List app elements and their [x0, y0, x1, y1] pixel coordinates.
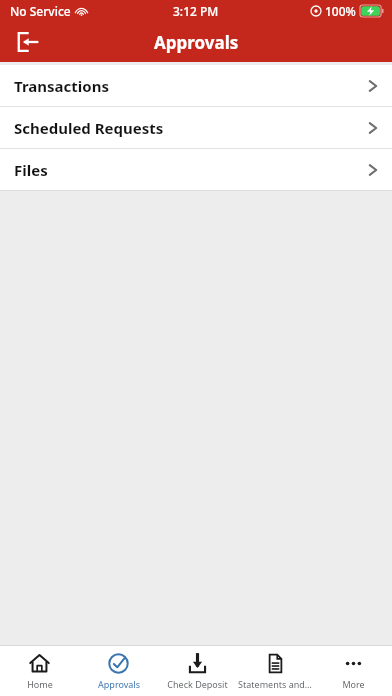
button[interactable]: Scheduled Requests: [0, 107, 392, 148]
button[interactable]: Approvals: [79, 646, 158, 696]
button[interactable]: Home: [0, 646, 79, 696]
staticText: Statements and D...: [238, 678, 312, 690]
button[interactable]: Transactions: [0, 65, 392, 106]
button[interactable]: Check Deposit: [158, 646, 236, 696]
staticText: 3:12 PM: [173, 3, 219, 19]
staticText: Approvals: [154, 31, 239, 54]
button[interactable]: Files: [0, 149, 392, 190]
staticText: Files: [14, 160, 48, 180]
staticText: Scheduled Requests: [14, 118, 164, 138]
staticText: No Service: [10, 3, 71, 19]
staticText: 100%: [325, 3, 356, 19]
button[interactable]: Log out: [8, 22, 48, 62]
button[interactable]: More: [314, 646, 392, 696]
staticText: Check Deposit: [167, 678, 228, 690]
staticText: More: [342, 678, 365, 690]
staticText: Home: [27, 678, 53, 690]
staticText: Approvals: [98, 678, 140, 690]
button[interactable]: Statements and D...: [236, 646, 314, 696]
staticText: Transactions: [14, 76, 109, 96]
